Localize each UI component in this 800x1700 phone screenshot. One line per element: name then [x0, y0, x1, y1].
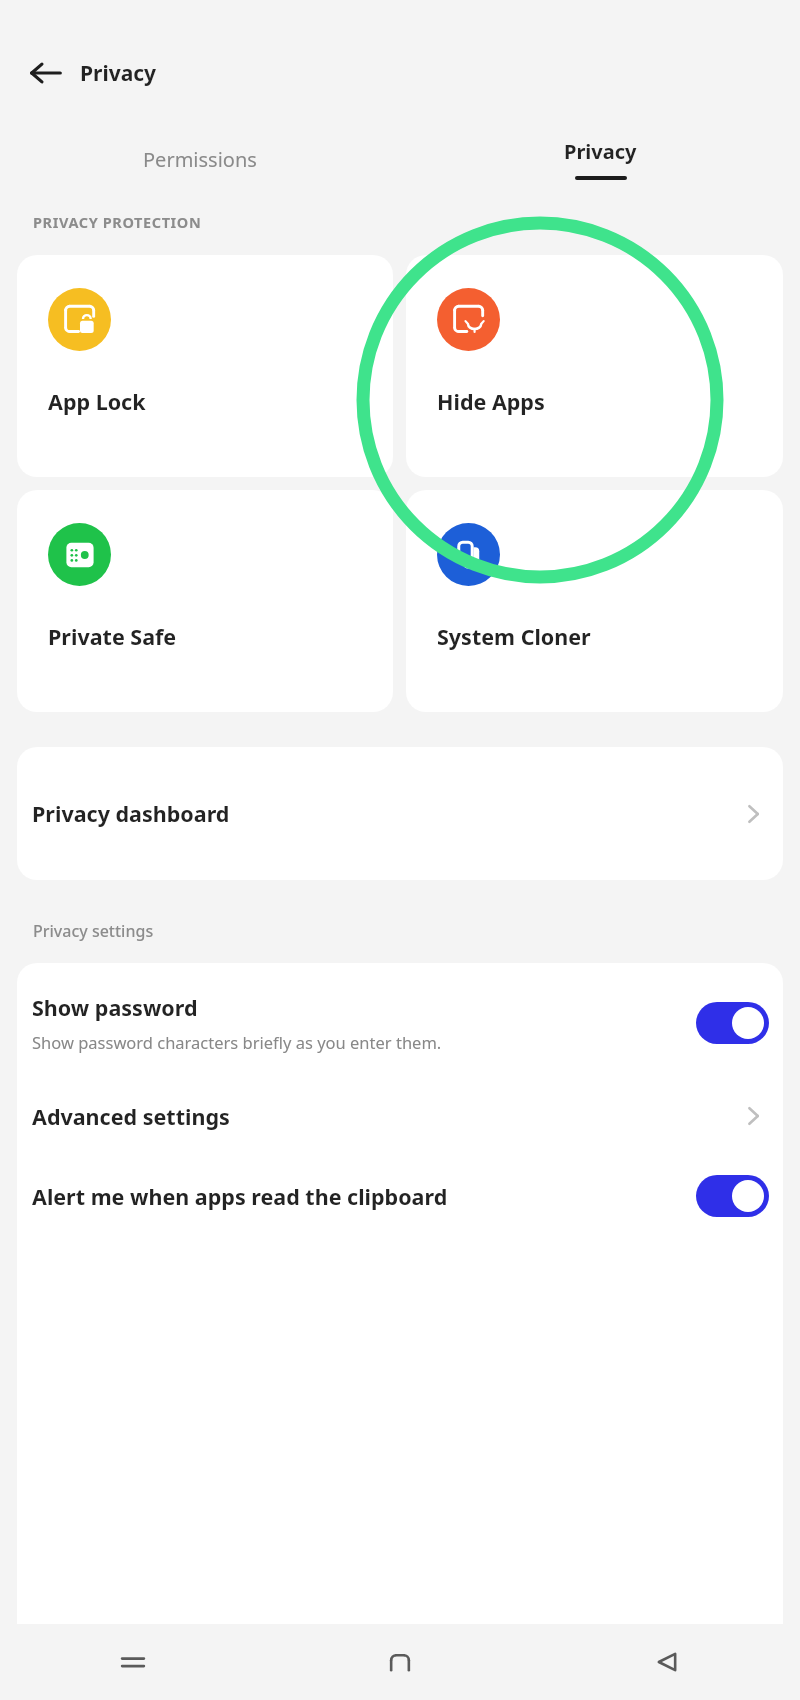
button[interactable]: Hide Apps	[406, 255, 783, 477]
button[interactable]: Permissions	[0, 128, 400, 190]
staticText: App Lock	[48, 387, 146, 416]
staticText: Alert me when apps read the clipboard	[32, 1182, 448, 1211]
button[interactable]: Back	[22, 49, 70, 97]
staticText: System Cloner	[437, 622, 591, 651]
staticText: PRIVACY PROTECTION	[33, 212, 202, 232]
staticText: Permissions	[143, 146, 257, 173]
button[interactable]: Home	[266, 1624, 533, 1700]
button[interactable]: Privacy dashboard	[17, 747, 783, 880]
staticText: Advanced settings	[32, 1102, 738, 1131]
button[interactable]: App Lock	[17, 255, 393, 477]
button[interactable]: Back	[533, 1624, 800, 1700]
button[interactable]: System Cloner	[406, 490, 783, 712]
staticText: Show password characters briefly as you …	[32, 1031, 442, 1053]
button[interactable]: Toggle on	[696, 1175, 769, 1217]
button[interactable]: Recents	[0, 1624, 266, 1700]
staticText: Hide Apps	[437, 387, 545, 416]
button[interactable]: Alert me when apps read the clipboard	[17, 1157, 783, 1235]
button[interactable]: Advanced settings	[17, 1075, 783, 1157]
staticText: Privacy	[80, 59, 157, 88]
staticText: Privacy	[564, 138, 637, 165]
staticText: Private Safe	[48, 622, 177, 651]
staticText: Privacy settings	[33, 920, 154, 942]
staticText: Privacy dashboard	[32, 799, 738, 828]
staticText: Show password	[32, 993, 198, 1022]
button[interactable]: Show password	[17, 963, 783, 1075]
button[interactable]: Privacy	[400, 128, 800, 190]
button[interactable]: Private Safe	[17, 490, 393, 712]
button[interactable]: Toggle on	[696, 1002, 769, 1044]
